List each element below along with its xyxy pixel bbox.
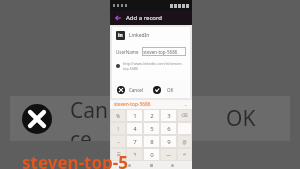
staticText: 5 bbox=[150, 125, 154, 133]
staticText: — bbox=[166, 152, 171, 158]
other: OK bbox=[153, 86, 161, 94]
button[interactable]: % bbox=[111, 110, 125, 121]
staticText: UserName bbox=[116, 49, 139, 55]
staticText: 4 bbox=[133, 125, 137, 133]
staticText: in bbox=[118, 32, 123, 39]
button[interactable]: Cancel bbox=[10, 96, 110, 141]
staticText: 9 bbox=[167, 138, 171, 146]
staticText: steven-top-5 bbox=[22, 151, 128, 169]
staticText: 7 bbox=[133, 138, 137, 146]
staticText: 6 bbox=[167, 125, 171, 133]
button[interactable]: OK bbox=[192, 96, 290, 141]
staticText: LinkedIn bbox=[129, 32, 150, 39]
button[interactable]: steven-top-5686 bbox=[142, 47, 186, 56]
button[interactable]: ⌫ bbox=[178, 110, 191, 121]
staticText: steven-top-5686 bbox=[142, 49, 178, 55]
staticText: ↰ bbox=[133, 152, 137, 157]
staticText: 1 bbox=[133, 112, 137, 120]
staticText: ⌫ bbox=[181, 113, 188, 118]
staticText: ☰ bbox=[116, 152, 121, 157]
staticText: 0 bbox=[150, 151, 154, 159]
staticText: @ bbox=[182, 139, 187, 145]
staticText: steven-top-5686 bbox=[114, 101, 151, 108]
other: Cancel bbox=[117, 86, 125, 94]
button[interactable]: ↰ bbox=[127, 149, 142, 160]
staticText: Add a record bbox=[126, 14, 163, 22]
staticText: ~ bbox=[117, 139, 120, 145]
button[interactable]: 3 bbox=[161, 110, 176, 121]
button[interactable]: 2 bbox=[144, 110, 159, 121]
button[interactable]: 1 bbox=[127, 110, 142, 121]
staticText: 8 bbox=[150, 138, 154, 146]
other: Cancel bbox=[22, 104, 52, 134]
button[interactable]: Cancel bbox=[117, 81, 153, 98]
staticText: Cancel bbox=[129, 87, 144, 93]
button[interactable]: OK bbox=[153, 81, 190, 98]
button[interactable]: 7 bbox=[127, 136, 142, 147]
button[interactable]: ~ bbox=[111, 136, 125, 147]
button[interactable]: 5 bbox=[144, 123, 159, 134]
staticText: ! bbox=[117, 126, 119, 132]
staticText: Cance bbox=[70, 96, 110, 141]
button[interactable]: 6 bbox=[161, 123, 176, 134]
staticText: OK bbox=[226, 104, 256, 133]
button[interactable]: ! bbox=[111, 123, 125, 134]
button[interactable]: 8 bbox=[144, 136, 159, 147]
staticText: ⌄ bbox=[184, 102, 188, 107]
button[interactable]: — bbox=[161, 149, 176, 160]
staticText: OK bbox=[167, 87, 174, 93]
button[interactable]: ↵ bbox=[178, 149, 191, 160]
staticText: 3 bbox=[167, 112, 171, 120]
button[interactable]: 0 bbox=[144, 149, 159, 160]
button[interactable]: ☰ bbox=[111, 149, 125, 160]
button[interactable]: 4 bbox=[127, 123, 142, 134]
button[interactable]: Back bbox=[114, 14, 122, 22]
button[interactable]: 9 bbox=[161, 136, 176, 147]
staticText: ↵ bbox=[183, 152, 187, 157]
staticText: % bbox=[116, 113, 120, 119]
staticText: 2 bbox=[150, 112, 154, 120]
button[interactable]: @ bbox=[178, 136, 191, 147]
staticText: http://www.linkedin.com/in/steven-top-56… bbox=[123, 61, 186, 71]
